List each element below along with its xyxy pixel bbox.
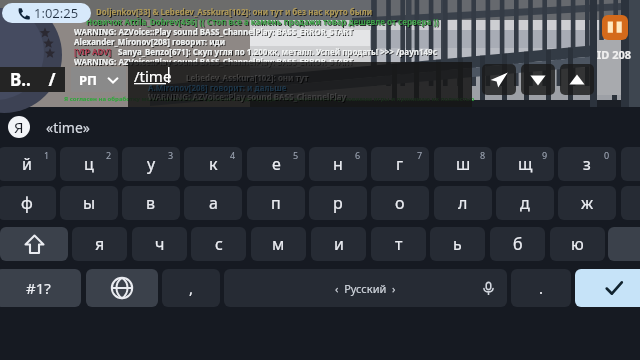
- staticText: ж: [581, 192, 594, 214]
- staticText: е: [272, 153, 281, 175]
- staticText: а: [209, 192, 218, 214]
- button[interactable]: р: [309, 186, 367, 220]
- staticText: Doljenkov[33] & Lebedev_Asskura[102]: он…: [96, 6, 373, 17]
- button[interactable]: я: [72, 227, 127, 261]
- staticText: я: [95, 233, 105, 255]
- button[interactable]: б: [490, 227, 545, 261]
- button[interactable]: о: [371, 186, 429, 220]
- button[interactable]: .: [511, 269, 571, 307]
- staticText: Новичок Attila_Dobrev[456] (( Стоп все а…: [87, 17, 440, 28]
- button[interactable]: т: [371, 227, 426, 261]
- button[interactable]: #1?: [0, 269, 81, 307]
- staticText: WARNING: AZVoice::Play sound BASS_Channe…: [148, 91, 347, 102]
- button[interactable]: м: [251, 227, 306, 261]
- button[interactable]: л: [434, 186, 492, 220]
- button[interactable]: В.. /: [0, 67, 65, 92]
- staticText: #1?: [26, 278, 51, 298]
- button[interactable]: ц: [60, 147, 118, 181]
- staticText: 5: [293, 149, 299, 161]
- button[interactable]: щ: [496, 147, 554, 181]
- staticText: Lebedev_Asskura[102]: они тут: [187, 73, 310, 84]
- button[interactable]: ф: [0, 186, 56, 220]
- staticText: Sanya_Benzo[671]: Скуп угля по 1.200кк, …: [118, 46, 437, 57]
- staticText: 6: [355, 149, 361, 161]
- staticText: 3: [168, 149, 174, 161]
- staticText: ю: [571, 233, 584, 255]
- button[interactable]: у: [122, 147, 180, 181]
- staticText: Alexander_Mironov[208] говорит: иди: [75, 37, 227, 48]
- staticText: ч: [155, 233, 165, 255]
- button[interactable]: и: [311, 227, 366, 261]
- staticText: ф: [21, 192, 33, 214]
- button[interactable]: а: [184, 186, 242, 220]
- staticText: к: [209, 153, 218, 175]
- staticText: .: [539, 278, 544, 298]
- staticText: ID 208: [597, 47, 632, 62]
- staticText: 0: [604, 149, 610, 161]
- button[interactable]: Menu: [602, 15, 628, 40]
- button[interactable]: н: [309, 147, 367, 181]
- button[interactable]: ь: [430, 227, 485, 261]
- staticText: й: [22, 153, 32, 175]
- button[interactable]: Shift: [0, 227, 68, 261]
- button[interactable]: ы: [60, 186, 118, 220]
- button[interactable]: й: [0, 147, 56, 181]
- button[interactable]: ю: [550, 227, 605, 261]
- button[interactable]: РП: [71, 67, 126, 92]
- button[interactable]: «time»: [46, 118, 90, 137]
- button[interactable]: г: [371, 147, 429, 181]
- staticText: [VIP ADV]: [75, 47, 113, 58]
- staticText: з: [583, 153, 591, 175]
- button[interactable]: ,: [162, 269, 220, 307]
- staticText: 4: [230, 149, 236, 161]
- staticText: м: [272, 233, 285, 255]
- button[interactable]: Change language: [86, 269, 158, 307]
- staticText: A.Mironov[208] говорит: и дальше: [149, 83, 288, 94]
- button[interactable]: Space, Russian: [224, 269, 507, 307]
- staticText: у: [147, 153, 156, 175]
- staticText: Doljenkov[33] & Lebedev_Asskura[102]: он…: [97, 7, 374, 18]
- staticText: Sanya_Benzo[671]: Скуп угля по 1.200кк, …: [119, 47, 438, 58]
- staticText: г: [396, 153, 404, 175]
- button[interactable]: Backspace: [608, 227, 640, 261]
- button[interactable]: ч: [132, 227, 187, 261]
- staticText: д: [520, 192, 530, 214]
- button[interactable]: ш: [434, 147, 492, 181]
- staticText: б: [513, 233, 523, 255]
- staticText: т: [395, 233, 403, 255]
- staticText: ‹ Русский ›: [335, 281, 396, 296]
- staticText: ы: [83, 192, 96, 214]
- staticText: 9: [542, 149, 548, 161]
- staticText: ц: [84, 153, 94, 175]
- button[interactable]: Scroll down: [521, 64, 555, 95]
- staticText: WARNING: AZVoice::Play sound BASS_Channe…: [75, 27, 355, 38]
- button[interactable]: Send: [482, 64, 516, 95]
- button[interactable]: к: [184, 147, 242, 181]
- button[interactable]: с: [191, 227, 246, 261]
- button[interactable]: е: [247, 147, 305, 181]
- button[interactable]: Yandex: [8, 116, 30, 138]
- staticText: WARNING: AZVoice::Play sound BASS_Channe…: [75, 57, 355, 68]
- button[interactable]: д: [496, 186, 554, 220]
- staticText: ь: [453, 233, 462, 255]
- button[interactable]: Ongoing call 1:02:25: [2, 3, 91, 23]
- staticText: 8: [480, 149, 486, 161]
- staticText: в: [146, 192, 156, 214]
- button[interactable]: Scroll up: [560, 64, 594, 95]
- button[interactable]: Enter: [575, 269, 640, 307]
- button[interactable]: /time: [128, 62, 472, 107]
- staticText: ш: [456, 153, 471, 175]
- staticText: WARNING: AZVoice::Play sound BASS_Channe…: [74, 56, 354, 67]
- button[interactable]: ж: [558, 186, 616, 220]
- staticText: /time: [134, 66, 172, 86]
- staticText: л: [458, 192, 468, 214]
- staticText: [VIP ADV]: [74, 46, 112, 57]
- button[interactable]: з: [558, 147, 616, 181]
- staticText: п: [271, 192, 281, 214]
- staticText: WARNING: AZVoice::Play sound BASS_Channe…: [74, 26, 354, 37]
- staticText: 1: [44, 149, 50, 161]
- button[interactable]: в: [122, 186, 180, 220]
- button[interactable]: п: [247, 186, 305, 220]
